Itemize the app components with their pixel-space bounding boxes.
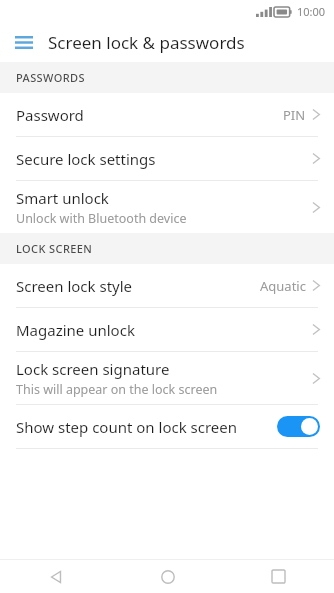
staticText: Magazine unlock: [16, 320, 135, 340]
staticText: 10:00: [297, 4, 326, 19]
button[interactable]: Smart unlock: [0, 181, 334, 233]
button[interactable]: Recent apps: [223, 560, 334, 593]
staticText: PIN: [283, 106, 306, 124]
button[interactable]: Magazine unlock: [0, 308, 334, 351]
staticText: Screen lock & passwords: [48, 31, 245, 54]
button[interactable]: Password: [0, 93, 334, 136]
staticText: This will appear on the lock screen: [16, 381, 218, 398]
staticText: Aquatic: [260, 277, 306, 295]
staticText: Show step count on lock screen: [16, 417, 277, 437]
staticText: LOCK SCREEN: [16, 241, 93, 256]
button[interactable]: Back: [0, 560, 112, 593]
button[interactable]: Screen lock style: [0, 264, 334, 307]
staticText: Screen lock style: [16, 276, 133, 296]
button[interactable]: Show step count on lock screen: [0, 405, 334, 448]
staticText: Smart unlock: [16, 188, 109, 208]
button[interactable]: Home: [112, 560, 223, 593]
staticText: PASSWORDS: [16, 70, 85, 85]
staticText: Secure lock settings: [16, 149, 156, 169]
staticText: Lock screen signature: [16, 359, 170, 379]
button[interactable]: Lock screen signature: [0, 352, 334, 404]
button[interactable]: Secure lock settings: [0, 137, 334, 180]
button[interactable]: Menu: [8, 26, 40, 58]
staticText: Password: [16, 105, 84, 125]
staticText: Unlock with Bluetooth device: [16, 210, 187, 227]
